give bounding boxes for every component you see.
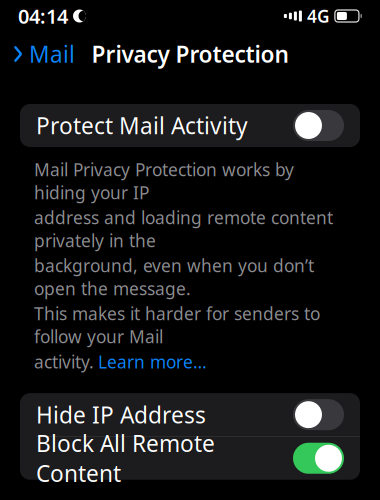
button[interactable]: Block All Remote Content <box>20 437 360 480</box>
staticText: Mail Privacy Protection works by hiding … <box>34 158 294 204</box>
staticText: This makes it harder for senders to foll… <box>34 302 320 348</box>
staticText: Protect Mail Activity <box>36 110 248 140</box>
staticText: Hide IP Address <box>36 400 206 430</box>
staticText: background, even when you don’t open the… <box>34 254 314 300</box>
staticText: address and loading remote content priva… <box>34 206 333 252</box>
staticText: Block All Remote Content <box>36 428 215 488</box>
staticText: Mail <box>29 39 75 69</box>
button[interactable]: Protect Mail Activity <box>20 104 360 147</box>
button[interactable]: Mail <box>0 33 75 75</box>
staticText: Privacy Protection <box>91 39 288 69</box>
staticText: 4G <box>307 4 330 27</box>
staticText: Learn more… <box>98 350 207 373</box>
button[interactable]: Learn more… <box>98 350 207 373</box>
button[interactable]: Hide IP Address <box>20 393 360 436</box>
staticText: 04:14 <box>18 3 68 29</box>
staticText: activity. <box>34 350 94 373</box>
